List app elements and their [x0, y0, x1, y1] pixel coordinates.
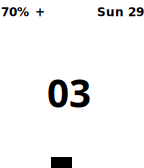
staticText: 70%	[1, 5, 29, 19]
button[interactable]: 03	[0, 73, 144, 111]
staticText: 03	[47, 67, 91, 118]
staticText: +	[35, 5, 45, 19]
staticText: Sun 29	[97, 5, 144, 19]
button[interactable]: Start	[0, 157, 144, 168]
